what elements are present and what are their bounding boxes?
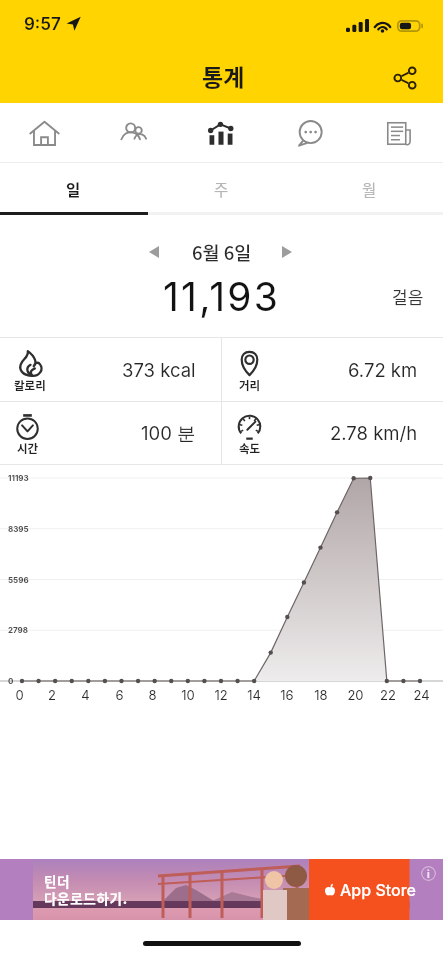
staticText: 속도 bbox=[239, 440, 261, 457]
staticText: App Store bbox=[340, 880, 416, 899]
button[interactable]: 거리 bbox=[222, 338, 443, 401]
button[interactable]: 틴더 다운로드하기. bbox=[0, 859, 443, 920]
staticText: 8395 bbox=[8, 524, 29, 534]
staticText: 일 bbox=[66, 178, 81, 200]
staticText: 24 bbox=[413, 687, 430, 703]
staticText: 12 bbox=[214, 687, 228, 703]
staticText: 4 bbox=[81, 687, 90, 703]
staticText: 주 bbox=[214, 178, 229, 200]
button[interactable]: Friends bbox=[88, 104, 176, 162]
staticText: 칼로리 bbox=[14, 377, 46, 394]
staticText: 8 bbox=[148, 687, 157, 703]
button[interactable]: Statistics bbox=[176, 104, 265, 162]
staticText: 0 bbox=[15, 687, 24, 703]
button[interactable]: Next day bbox=[269, 232, 305, 272]
staticText: 14 bbox=[247, 687, 261, 703]
staticText: 6.72 km bbox=[348, 359, 418, 381]
staticText: 11,193 bbox=[163, 273, 280, 320]
staticText: 6 bbox=[115, 687, 124, 703]
button[interactable]: 일 bbox=[0, 163, 147, 215]
button[interactable]: 속도 bbox=[222, 402, 443, 464]
button[interactable]: 칼로리 bbox=[0, 338, 221, 401]
staticText: 틴더 다운로드하기. bbox=[44, 871, 128, 908]
staticText: 2798 bbox=[8, 625, 29, 635]
staticText: 5596 bbox=[8, 575, 29, 585]
staticText: 18 bbox=[314, 687, 328, 703]
staticText: 걸음 bbox=[392, 284, 424, 309]
staticText: 2 bbox=[48, 687, 56, 703]
staticText: 통계 bbox=[202, 59, 245, 92]
staticText: 22 bbox=[380, 687, 396, 703]
button[interactable]: Previous day bbox=[136, 232, 172, 272]
button[interactable]: Chat bbox=[265, 104, 354, 162]
staticText: 16 bbox=[280, 687, 294, 703]
staticText: i bbox=[427, 868, 430, 880]
staticText: 2.78 km/h bbox=[330, 422, 418, 444]
staticText: 10 bbox=[181, 687, 195, 703]
staticText: 시간 bbox=[17, 440, 39, 457]
button[interactable]: 주 bbox=[147, 163, 295, 215]
staticText: 월 bbox=[362, 178, 377, 200]
button[interactable]: Home bbox=[0, 104, 88, 162]
button[interactable]: 시간 bbox=[0, 402, 221, 464]
staticText: 0 bbox=[8, 676, 14, 686]
staticText: 100 분 bbox=[141, 422, 196, 445]
staticText: 9:57 bbox=[24, 14, 61, 35]
staticText: 373 kcal bbox=[122, 359, 196, 381]
button[interactable]: Ad info bbox=[421, 866, 436, 881]
staticText: 20 bbox=[347, 687, 364, 703]
button[interactable]: Share bbox=[383, 56, 427, 100]
staticText: 6월 6일 bbox=[192, 239, 252, 266]
button[interactable]: News bbox=[354, 104, 443, 162]
button[interactable]: 월 bbox=[295, 163, 443, 215]
staticText: 11193 bbox=[8, 473, 29, 483]
staticText: 거리 bbox=[239, 377, 261, 394]
